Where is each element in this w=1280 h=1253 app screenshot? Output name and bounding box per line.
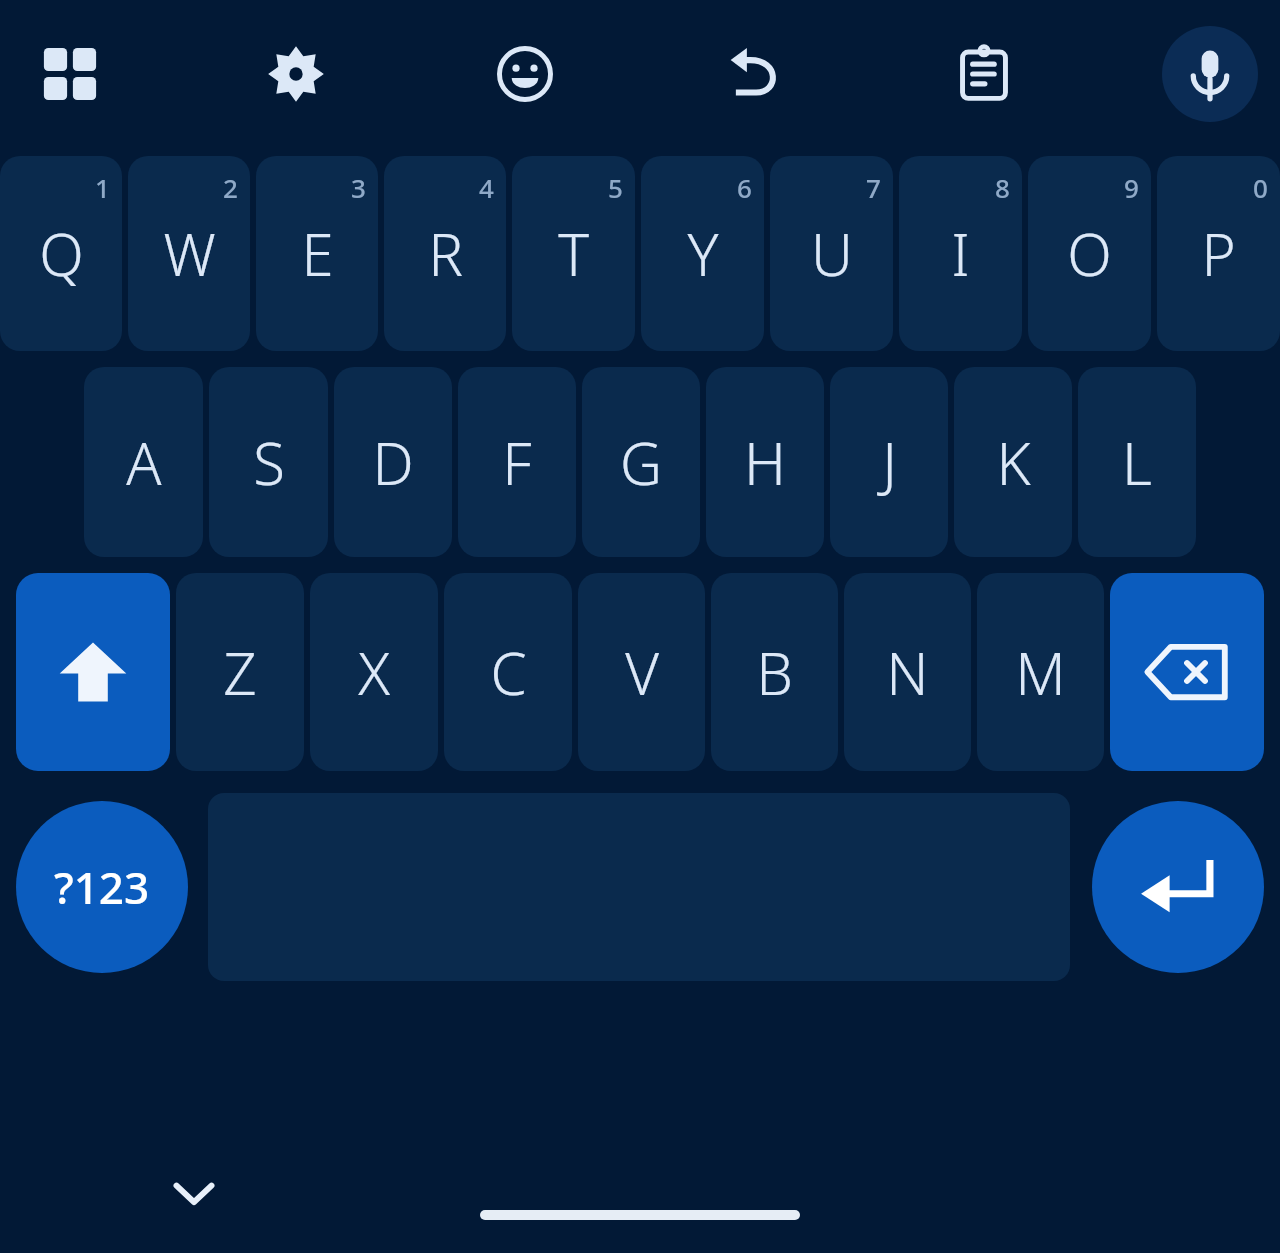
staticText: X bbox=[358, 633, 390, 712]
button[interactable]: Clipboard bbox=[938, 28, 1030, 120]
staticText: T bbox=[558, 214, 589, 293]
staticText: 7 bbox=[866, 170, 881, 205]
button[interactable]: Q bbox=[0, 156, 122, 351]
staticText: S bbox=[253, 423, 285, 502]
staticText: W bbox=[163, 214, 216, 293]
button[interactable]: N bbox=[844, 573, 971, 771]
staticText: A bbox=[126, 423, 162, 502]
staticText: M bbox=[1015, 633, 1066, 712]
button[interactable]: F bbox=[458, 367, 576, 557]
staticText: G bbox=[620, 423, 662, 502]
button[interactable]: Shift bbox=[16, 573, 170, 771]
button[interactable]: X bbox=[310, 573, 438, 771]
staticText: Y bbox=[687, 214, 719, 293]
button[interactable]: H bbox=[706, 367, 824, 557]
button[interactable]: I bbox=[899, 156, 1022, 351]
button[interactable]: E bbox=[256, 156, 378, 351]
staticText: 1 bbox=[95, 170, 110, 205]
button[interactable]: Enter bbox=[1092, 801, 1264, 973]
button[interactable]: V bbox=[578, 573, 705, 771]
staticText: N bbox=[886, 633, 929, 712]
staticText: Q bbox=[39, 214, 84, 293]
button[interactable]: B bbox=[711, 573, 838, 771]
button[interactable]: Undo bbox=[709, 28, 801, 120]
button[interactable]: Keyboard layouts bbox=[24, 28, 116, 120]
staticText: J bbox=[882, 423, 897, 502]
button[interactable]: L bbox=[1078, 367, 1196, 557]
button[interactable]: T bbox=[512, 156, 635, 351]
button[interactable]: O bbox=[1028, 156, 1151, 351]
staticText: ?123 bbox=[54, 857, 150, 917]
button[interactable]: Y bbox=[641, 156, 764, 351]
button[interactable]: Voice input bbox=[1162, 26, 1258, 122]
button[interactable]: P bbox=[1157, 156, 1280, 351]
staticText: 4 bbox=[479, 170, 494, 205]
button[interactable]: M bbox=[977, 573, 1104, 771]
staticText: 9 bbox=[1124, 170, 1139, 205]
button[interactable]: ?123 bbox=[16, 801, 188, 973]
button[interactable]: Emoji bbox=[479, 28, 571, 120]
staticText: 3 bbox=[351, 170, 366, 205]
staticText: 0 bbox=[1253, 170, 1268, 205]
staticText: F bbox=[502, 423, 532, 502]
button[interactable]: J bbox=[830, 367, 948, 557]
staticText: K bbox=[996, 423, 1031, 502]
button[interactable]: D bbox=[334, 367, 452, 557]
staticText: E bbox=[301, 214, 334, 293]
staticText: P bbox=[1201, 214, 1236, 293]
staticText: I bbox=[951, 214, 970, 293]
staticText: B bbox=[756, 633, 793, 712]
button[interactable]: Hide keyboard bbox=[158, 1157, 230, 1229]
staticText: 5 bbox=[608, 170, 623, 205]
staticText: H bbox=[744, 423, 786, 502]
staticText: 2 bbox=[223, 170, 238, 205]
staticText: D bbox=[372, 423, 414, 502]
staticText: C bbox=[490, 633, 527, 712]
button[interactable]: W bbox=[128, 156, 250, 351]
staticText: L bbox=[1122, 423, 1152, 502]
button[interactable]: Backspace bbox=[1110, 573, 1264, 771]
button[interactable]: K bbox=[954, 367, 1072, 557]
button[interactable]: S bbox=[209, 367, 328, 557]
staticText: O bbox=[1067, 214, 1112, 293]
staticText: Z bbox=[223, 633, 257, 712]
staticText: U bbox=[811, 214, 853, 293]
button[interactable]: Z bbox=[176, 573, 304, 771]
staticText: 6 bbox=[737, 170, 752, 205]
button[interactable]: G bbox=[582, 367, 700, 557]
button[interactable]: Settings bbox=[250, 28, 342, 120]
staticText: R bbox=[428, 214, 463, 293]
button[interactable]: C bbox=[444, 573, 572, 771]
staticText: V bbox=[625, 633, 659, 712]
button[interactable]: A bbox=[84, 367, 203, 557]
staticText: 8 bbox=[995, 170, 1010, 205]
button[interactable]: R bbox=[384, 156, 506, 351]
button[interactable]: U bbox=[770, 156, 893, 351]
